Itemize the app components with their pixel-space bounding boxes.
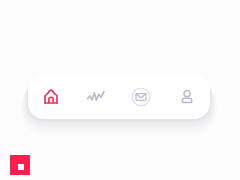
button[interactable]: Messages <box>118 75 164 119</box>
button[interactable]: Profile <box>164 75 210 119</box>
button[interactable]: Home <box>28 75 73 119</box>
button[interactable]: Badge <box>10 155 30 175</box>
button[interactable]: Activity <box>73 75 118 119</box>
